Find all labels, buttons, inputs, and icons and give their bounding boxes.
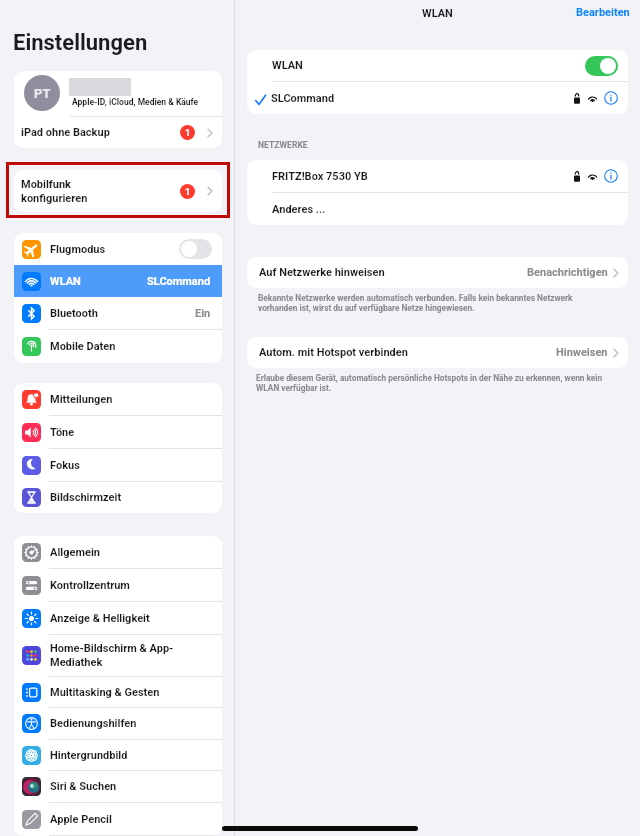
button[interactable]: Mobilfunk bbox=[14, 170, 222, 212]
button[interactable]: Bedienungshilfen bbox=[14, 708, 222, 739]
staticText: WLAN bbox=[272, 59, 303, 72]
staticText: Allgemein bbox=[50, 546, 100, 559]
button[interactable]: Flugmodus ein/aus bbox=[179, 239, 212, 259]
button[interactable]: Apple Pencil bbox=[14, 803, 222, 835]
staticText: Multitasking & Gesten bbox=[50, 686, 160, 699]
staticText: Hintergrundbild bbox=[50, 749, 128, 762]
staticText: Hinweisen bbox=[556, 346, 608, 359]
staticText: iPad ohne Backup bbox=[21, 126, 110, 139]
staticText: Benachrichtigen bbox=[527, 266, 608, 279]
button[interactable]: Anderes ... bbox=[247, 193, 628, 225]
staticText: Einstellungen bbox=[13, 30, 148, 56]
staticText: Autom. mit Hotspot verbinden bbox=[259, 346, 408, 359]
staticText: Anderes ... bbox=[272, 203, 326, 216]
button[interactable]: Hintergrundbild bbox=[14, 740, 222, 770]
staticText: Mobile Daten bbox=[50, 340, 116, 353]
button[interactable]: FRITZ!Box 7530 YB bbox=[247, 160, 628, 192]
staticText: konfigurieren bbox=[21, 192, 88, 205]
staticText: Fokus bbox=[50, 459, 80, 472]
button[interactable]: Töne bbox=[14, 416, 222, 448]
button[interactable]: WLAN bbox=[14, 265, 222, 297]
staticText: Bedienungshilfen bbox=[50, 717, 137, 730]
staticText: Flugmodus bbox=[50, 243, 106, 256]
staticText: Kontrollzentrum bbox=[50, 579, 130, 592]
staticText: Apple-ID, iCloud, Medien & Käufe bbox=[72, 97, 199, 107]
staticText: Bildschirmzeit bbox=[50, 491, 122, 504]
staticText: Bearbeiten bbox=[576, 6, 630, 19]
button[interactable]: Auf Netzwerke hinweisen bbox=[247, 257, 628, 288]
button[interactable]: SLCommand bbox=[247, 82, 628, 114]
button[interactable]: PT bbox=[14, 71, 222, 114]
button[interactable]: Home-Bildschirm & App- Mediathek bbox=[14, 635, 222, 676]
button[interactable]: Multitasking & Gesten bbox=[14, 677, 222, 707]
staticText: Auf Netzwerke hinweisen bbox=[259, 266, 385, 279]
staticText: NETZWERKE bbox=[258, 140, 308, 150]
staticText: Bekannte Netzwerke werden automatisch ve… bbox=[258, 293, 573, 313]
staticText: PT bbox=[34, 86, 51, 101]
button[interactable]: Bluetooth bbox=[14, 297, 222, 329]
button[interactable]: Bearbeiten bbox=[576, 6, 630, 19]
button[interactable]: Mitteilungen bbox=[14, 383, 222, 415]
staticText: SLCommand bbox=[271, 92, 335, 105]
staticText: Bluetooth bbox=[50, 307, 98, 320]
button[interactable]: iPad ohne Backup bbox=[14, 117, 222, 148]
button[interactable]: Siri & Suchen bbox=[14, 771, 222, 802]
staticText: WLAN bbox=[50, 275, 81, 288]
staticText: 1 bbox=[185, 186, 191, 197]
button[interactable]: Mobile Daten bbox=[14, 330, 222, 362]
staticText: WLAN bbox=[422, 7, 453, 20]
staticText: Töne bbox=[50, 426, 75, 439]
staticText: FRITZ!Box 7530 YB bbox=[272, 170, 368, 183]
button[interactable]: WLAN ein/aus bbox=[585, 56, 618, 76]
button[interactable]: Anzeige & Helligkeit bbox=[14, 602, 222, 634]
button[interactable]: Flugmodus bbox=[14, 233, 222, 265]
staticText: Home-Bildschirm & App- Mediathek bbox=[50, 642, 174, 669]
staticText: Anzeige & Helligkeit bbox=[50, 612, 150, 625]
button[interactable]: Kontrollzentrum bbox=[14, 569, 222, 601]
staticText: Mobilfunk bbox=[21, 178, 71, 191]
button[interactable]: Info bbox=[604, 91, 618, 105]
staticText: SLCommand bbox=[147, 275, 211, 288]
staticText: Siri & Suchen bbox=[50, 780, 117, 793]
button[interactable]: Allgemein bbox=[14, 536, 222, 568]
button[interactable]: Info bbox=[604, 169, 618, 183]
staticText: Mitteilungen bbox=[50, 393, 113, 406]
staticText: Erlaube diesem Gerät, automatisch persön… bbox=[256, 373, 603, 393]
button[interactable]: Fokus bbox=[14, 449, 222, 481]
button[interactable]: Bildschirmzeit bbox=[14, 482, 222, 513]
button[interactable]: WLAN bbox=[247, 50, 628, 81]
staticText: Apple Pencil bbox=[50, 813, 112, 826]
staticText: Ein bbox=[195, 307, 211, 320]
button[interactable]: Autom. mit Hotspot verbinden bbox=[247, 337, 628, 368]
staticText: 1 bbox=[185, 127, 191, 138]
